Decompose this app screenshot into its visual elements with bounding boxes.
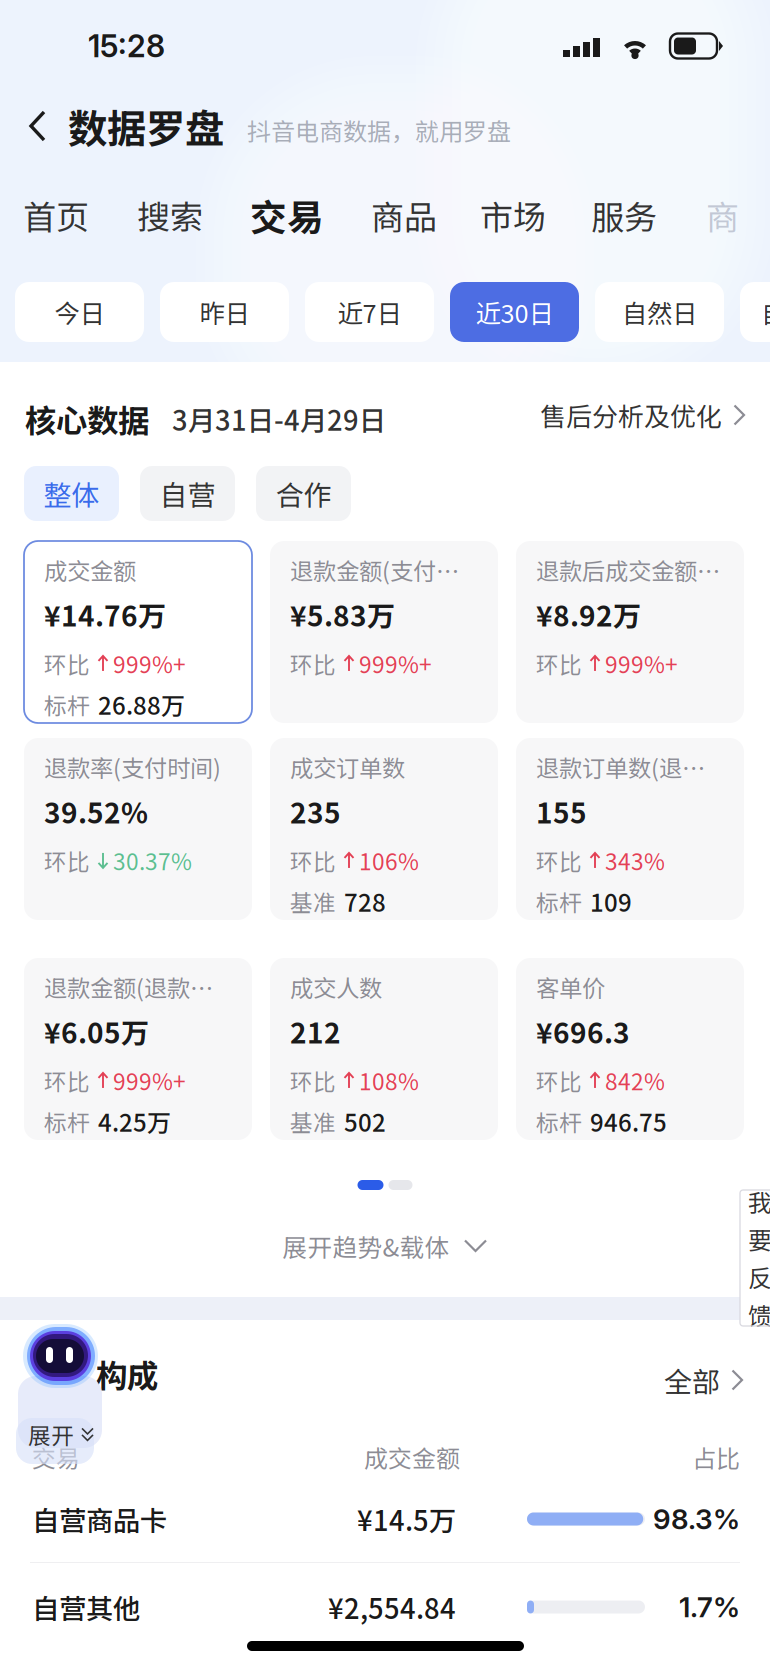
staticText: 商品 bbox=[371, 191, 437, 239]
button[interactable]: 自然日 bbox=[595, 282, 724, 342]
button[interactable]: 退款率(支付时间) bbox=[24, 738, 252, 920]
staticText: 首页 bbox=[23, 191, 89, 239]
button[interactable]: 搜索 bbox=[124, 189, 216, 241]
staticText: 环比 bbox=[44, 844, 90, 877]
staticText: 自营其他 bbox=[32, 1587, 140, 1627]
button[interactable]: 昨日 bbox=[160, 282, 289, 342]
staticText: 近7日 bbox=[337, 294, 401, 330]
button[interactable]: 商品 bbox=[358, 189, 450, 241]
staticText: 交易 bbox=[250, 188, 324, 242]
staticText: 成交金额 bbox=[364, 1440, 460, 1474]
button[interactable]: 今日 bbox=[15, 282, 144, 342]
button[interactable]: 成交人数 bbox=[270, 958, 498, 1140]
staticText: 环比 bbox=[536, 844, 582, 877]
staticText: 全部 bbox=[664, 1360, 720, 1400]
staticText: 要 bbox=[748, 1222, 770, 1256]
staticText: 212 bbox=[290, 1011, 341, 1051]
staticText: 自然日 bbox=[622, 294, 697, 330]
button[interactable]: Back bbox=[14, 90, 61, 162]
staticText: 108% bbox=[359, 1064, 419, 1097]
staticText: 3月31日-4月29日 bbox=[172, 399, 386, 439]
staticText: 基准 bbox=[290, 1105, 336, 1138]
button[interactable]: 售后分析及优化 bbox=[540, 387, 746, 443]
button[interactable]: 服务 bbox=[578, 189, 670, 241]
button[interactable]: 近7日 bbox=[305, 282, 434, 342]
staticText: 退款金额(支付… bbox=[290, 553, 459, 587]
staticText: ¥14.5万 bbox=[357, 1499, 456, 1539]
button[interactable]: 自营 bbox=[140, 466, 235, 521]
staticText: 标杆 bbox=[44, 688, 90, 721]
staticText: 展开 bbox=[28, 1418, 74, 1451]
staticText: 999%+ bbox=[359, 647, 432, 680]
staticText: 946.75 bbox=[590, 1104, 667, 1139]
staticText: 交易 bbox=[32, 1440, 80, 1474]
staticText: 343% bbox=[605, 844, 665, 877]
button[interactable]: 自然月 bbox=[740, 282, 770, 342]
button[interactable]: 退款金额(支付… bbox=[270, 541, 498, 723]
staticText: 市场 bbox=[480, 191, 546, 239]
staticText: 728 bbox=[344, 884, 386, 919]
staticText: 今日 bbox=[54, 294, 104, 330]
staticText: 商 bbox=[706, 191, 739, 239]
button[interactable]: 成交金额 bbox=[24, 541, 252, 723]
staticText: 自营 bbox=[159, 473, 215, 514]
staticText: 昨日 bbox=[199, 294, 249, 330]
button[interactable]: 成交订单数 bbox=[270, 738, 498, 920]
button[interactable]: 首页 bbox=[10, 189, 102, 241]
button[interactable]: 展开趋势&载体 bbox=[0, 1222, 770, 1270]
button[interactable]: 退款后成交金额… bbox=[516, 541, 744, 723]
button[interactable]: 退款金额(退款… bbox=[24, 958, 252, 1140]
staticText: 搜索 bbox=[137, 191, 203, 239]
staticText: 标杆 bbox=[536, 1105, 582, 1138]
staticText: 服务 bbox=[591, 191, 657, 239]
button[interactable]: 客单价 bbox=[516, 958, 744, 1140]
button[interactable]: 全部 bbox=[664, 1352, 744, 1408]
button[interactable]: 整体 bbox=[24, 466, 119, 521]
staticText: 999%+ bbox=[113, 1064, 186, 1097]
staticText: 自营商品卡 bbox=[32, 1499, 167, 1539]
staticText: 数据罗盘 bbox=[68, 97, 224, 154]
button[interactable]: 退款订单数(退… bbox=[516, 738, 744, 920]
staticText: 环比 bbox=[290, 647, 336, 680]
staticText: 999%+ bbox=[605, 647, 678, 680]
staticText: 合作 bbox=[275, 473, 331, 514]
button[interactable]: 交易 bbox=[237, 189, 337, 241]
staticText: 反 bbox=[748, 1259, 770, 1294]
staticText: 客单价 bbox=[536, 970, 605, 1004]
button[interactable]: 市场 bbox=[467, 189, 559, 241]
staticText: 成交金额 bbox=[44, 553, 136, 587]
button[interactable]: 自营商品卡 bbox=[0, 1476, 770, 1562]
staticText: 109 bbox=[590, 884, 632, 919]
staticText: 4.25万 bbox=[98, 1104, 171, 1139]
staticText: 106% bbox=[359, 844, 419, 877]
staticText: 标杆 bbox=[44, 1105, 90, 1138]
staticText: 展开趋势&载体 bbox=[282, 1228, 449, 1264]
button[interactable]: 近30日 bbox=[450, 282, 579, 342]
staticText: 我 bbox=[748, 1184, 770, 1219]
staticText: 30.37% bbox=[113, 844, 192, 877]
staticText: 退款订单数(退… bbox=[536, 750, 705, 784]
button[interactable]: 商 bbox=[693, 189, 752, 241]
staticText: ¥14.76万 bbox=[44, 594, 166, 634]
staticText: 退款率(支付时间) bbox=[44, 750, 221, 784]
staticText: 1.7% bbox=[679, 1590, 740, 1624]
button[interactable]: AI assistant bbox=[14, 1300, 118, 1456]
staticText: 退款后成交金额… bbox=[536, 553, 720, 587]
staticText: 842% bbox=[605, 1064, 665, 1097]
button[interactable]: 自营其他 bbox=[0, 1564, 770, 1650]
staticText: 502 bbox=[344, 1104, 386, 1139]
staticText: 馈 bbox=[748, 1297, 770, 1332]
staticText: ¥6.05万 bbox=[44, 1011, 149, 1051]
staticText: 退款金额(退款… bbox=[44, 970, 213, 1004]
staticText: 环比 bbox=[536, 647, 582, 680]
button[interactable]: 合作 bbox=[256, 466, 351, 521]
staticText: 环比 bbox=[44, 647, 90, 680]
staticText: ¥696.3 bbox=[536, 1011, 630, 1051]
staticText: 999%+ bbox=[113, 647, 186, 680]
staticText: 整体 bbox=[43, 473, 99, 514]
staticText: 98.3% bbox=[653, 1502, 740, 1536]
button[interactable]: Feedback bbox=[740, 1190, 770, 1326]
staticText: 自然月 bbox=[761, 294, 770, 330]
staticText: ¥2,554.84 bbox=[328, 1587, 456, 1627]
staticText: 环比 bbox=[44, 1064, 90, 1097]
